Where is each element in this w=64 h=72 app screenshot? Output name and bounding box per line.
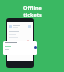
- staticText: tickets: [23, 11, 42, 18]
- button[interactable]: [3, 41, 37, 55]
- staticText: Offline: [23, 4, 42, 11]
- button[interactable]: Add ticket: [34, 46, 37, 49]
